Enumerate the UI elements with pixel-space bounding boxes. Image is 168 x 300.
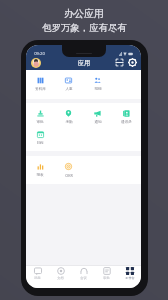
staticText: 办公应用: [64, 7, 104, 20]
button[interactable]: 日程: [26, 124, 54, 145]
button[interactable]: 报表: [26, 156, 54, 177]
button[interactable]: 会议: [72, 267, 95, 288]
button[interactable]: 审批: [95, 267, 118, 288]
staticText: 审批: [36, 120, 44, 124]
staticText: 工作台: [125, 276, 135, 280]
staticText: 消息: [34, 276, 41, 280]
button[interactable]: 考勤: [54, 103, 83, 124]
staticText: 资料库: [35, 87, 46, 91]
staticText: 通讯录: [121, 120, 132, 124]
button[interactable]: Profile: [31, 58, 41, 68]
staticText: 审批: [103, 276, 110, 280]
staticText: 日程: [36, 141, 44, 145]
button[interactable]: Settings: [128, 58, 137, 67]
button[interactable]: OKR: [54, 156, 83, 177]
staticText: OKR: [65, 173, 73, 177]
staticText: 会议: [80, 276, 87, 280]
staticText: 包罗万象，应有尽有: [42, 22, 127, 34]
staticText: 文档: [57, 276, 64, 280]
staticText: 09:20: [34, 51, 45, 57]
staticText: 考勤: [65, 120, 73, 124]
button[interactable]: 通知: [83, 103, 112, 124]
staticText: 人事: [65, 87, 73, 91]
button[interactable]: 工作台: [118, 267, 141, 288]
button[interactable]: Scan: [115, 58, 124, 67]
button[interactable]: 人事: [54, 70, 83, 91]
button[interactable]: 资料库: [26, 70, 54, 91]
staticText: 报表: [36, 173, 44, 177]
button[interactable]: 消息: [26, 267, 49, 288]
staticText: 应用: [78, 59, 90, 67]
button[interactable]: 文档: [49, 267, 72, 288]
staticText: 招聘: [94, 87, 102, 91]
button[interactable]: 通讯录: [112, 103, 141, 124]
button[interactable]: 审批: [26, 103, 54, 124]
staticText: 通知: [94, 120, 102, 124]
button[interactable]: 招聘: [83, 70, 112, 91]
